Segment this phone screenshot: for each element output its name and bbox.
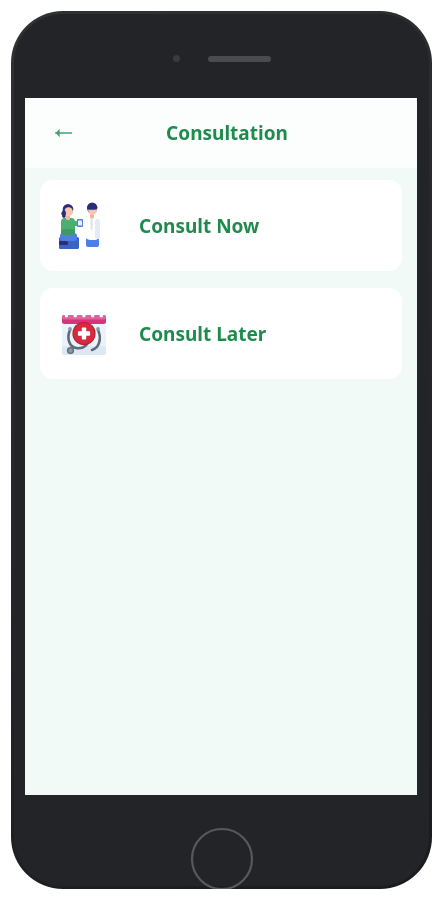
staticText: Consult Now: [139, 213, 260, 239]
staticText: Consult Later: [139, 321, 267, 347]
button[interactable]: Back: [41, 111, 85, 155]
button[interactable]: Consult Now: [40, 180, 402, 271]
staticText: Consultation: [166, 120, 288, 146]
button[interactable]: Consult Later: [40, 288, 402, 379]
